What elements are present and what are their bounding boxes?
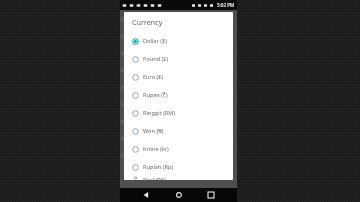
button[interactable]: Recent apps <box>204 188 218 202</box>
button[interactable]: Won (₩) <box>124 122 233 140</box>
staticText: Rupiah (Rp) <box>143 163 174 171</box>
staticText: Pound (£) <box>143 55 169 63</box>
button[interactable]: Euro (€) <box>124 68 233 86</box>
button[interactable]: Dollar ($) <box>124 32 233 50</box>
staticText: 5:02 PM <box>217 2 235 8</box>
staticText: Dollar ($) <box>143 37 167 45</box>
staticText: Krone (kr) <box>143 145 169 153</box>
staticText: Rupee (₹) <box>143 91 168 99</box>
staticText: Euro (€) <box>143 73 164 81</box>
staticText: Currency <box>132 17 163 27</box>
button[interactable]: Real (R$) <box>124 176 233 180</box>
button[interactable]: Pound (£) <box>124 50 233 68</box>
staticText: Ringgit (RM) <box>143 109 176 117</box>
staticText: Won (₩) <box>143 127 164 135</box>
button[interactable]: Krone (kr) <box>124 140 233 158</box>
button[interactable]: Rupee (₹) <box>124 86 233 104</box>
button[interactable]: Rupiah (Rp) <box>124 158 233 176</box>
button[interactable]: Ringgit (RM) <box>124 104 233 122</box>
button[interactable]: Back <box>139 188 153 202</box>
button[interactable]: Home <box>172 188 186 202</box>
staticText: Real (R$) <box>143 176 166 180</box>
